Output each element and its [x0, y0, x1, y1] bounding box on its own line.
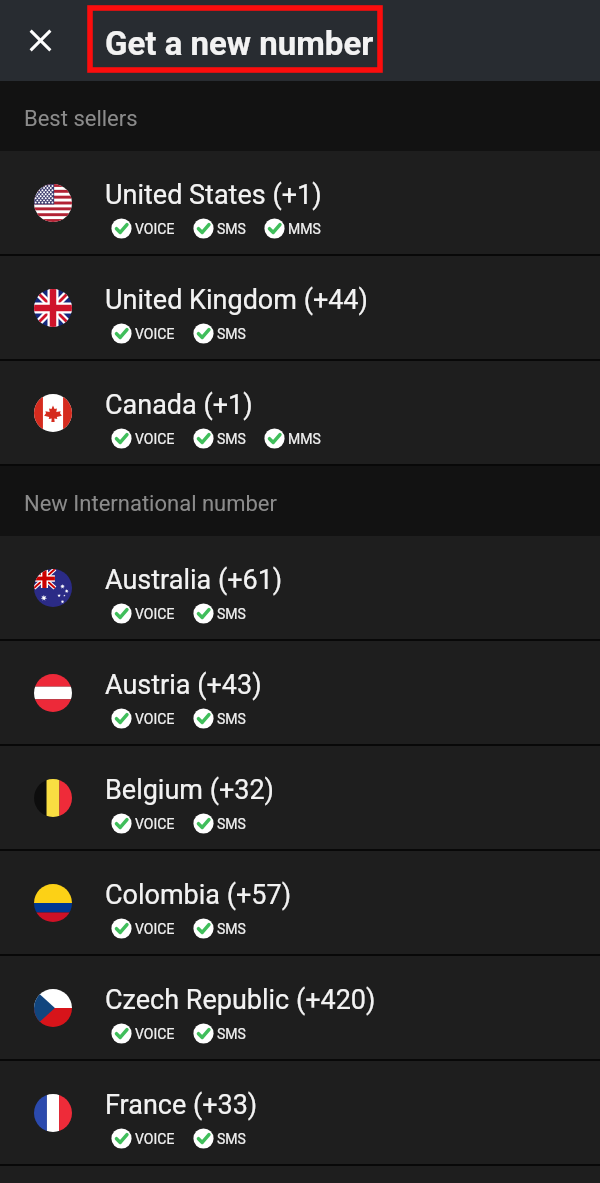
- staticText: SMS: [217, 326, 246, 342]
- button[interactable]: France (+33): [0, 1061, 600, 1164]
- staticText: Get a new number: [105, 24, 374, 63]
- staticText: Best sellers: [24, 106, 138, 132]
- staticText: VOICE: [135, 221, 175, 237]
- staticText: Czech Republic (+420): [105, 984, 376, 1016]
- button[interactable]: Close: [19, 19, 62, 62]
- staticText: VOICE: [135, 326, 175, 342]
- staticText: VOICE: [135, 1026, 175, 1042]
- staticText: SMS: [217, 606, 246, 622]
- staticText: SMS: [217, 816, 246, 832]
- staticText: VOICE: [135, 711, 175, 727]
- staticText: New International number: [24, 491, 277, 517]
- staticText: United States (+1): [105, 179, 322, 211]
- button[interactable]: Belgium (+32): [0, 746, 600, 849]
- staticText: Colombia (+57): [105, 879, 292, 911]
- staticText: SMS: [217, 1131, 246, 1147]
- button[interactable]: Austria (+43): [0, 641, 600, 744]
- staticText: Canada (+1): [105, 389, 253, 421]
- staticText: Belgium (+32): [105, 774, 275, 806]
- staticText: VOICE: [135, 816, 175, 832]
- staticText: VOICE: [135, 431, 175, 447]
- staticText: SMS: [217, 1026, 246, 1042]
- staticText: SMS: [217, 921, 246, 937]
- staticText: SMS: [217, 711, 246, 727]
- staticText: VOICE: [135, 1131, 175, 1147]
- staticText: SMS: [217, 221, 246, 237]
- button[interactable]: Colombia (+57): [0, 851, 600, 954]
- staticText: VOICE: [135, 606, 175, 622]
- staticText: MMS: [288, 221, 321, 237]
- staticText: VOICE: [135, 921, 175, 937]
- staticText: Australia (+61): [105, 564, 283, 596]
- staticText: SMS: [217, 431, 246, 447]
- button[interactable]: Canada (+1): [0, 361, 600, 464]
- button[interactable]: Czech Republic (+420): [0, 956, 600, 1059]
- staticText: United Kingdom (+44): [105, 284, 368, 316]
- staticText: MMS: [288, 431, 321, 447]
- button[interactable]: Australia (+61): [0, 536, 600, 639]
- staticText: Austria (+43): [105, 669, 262, 701]
- button[interactable]: United Kingdom (+44): [0, 256, 600, 359]
- button[interactable]: United States (+1): [0, 151, 600, 254]
- staticText: France (+33): [105, 1089, 258, 1121]
